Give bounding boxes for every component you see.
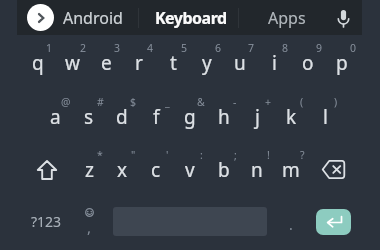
button[interactable]: & — [173, 90, 207, 143]
button[interactable]: 6 — [190, 36, 224, 89]
staticText: 6 — [215, 41, 222, 55]
staticText: 0 — [350, 41, 357, 55]
button[interactable]: ! — [240, 143, 274, 196]
button[interactable]: # — [72, 90, 106, 143]
staticText: a — [50, 104, 61, 130]
button[interactable]: 3 — [89, 36, 123, 89]
staticText: ) — [334, 95, 338, 109]
staticText: , — [87, 217, 92, 237]
button[interactable]: * — [72, 143, 106, 196]
button[interactable]: Apps — [268, 7, 306, 29]
staticText: o — [302, 50, 314, 76]
button[interactable]: Emoji — [72, 195, 106, 248]
staticText: i — [272, 50, 277, 76]
button[interactable]: 2 — [55, 36, 89, 89]
button[interactable]: + — [240, 90, 274, 143]
staticText: ? — [300, 148, 305, 162]
staticText: ! — [267, 148, 270, 162]
staticText: x — [117, 157, 128, 183]
staticText: q — [32, 50, 44, 76]
staticText: k — [286, 104, 297, 130]
staticText: 9 — [316, 41, 323, 55]
staticText: g — [184, 104, 196, 130]
staticText: ; — [234, 148, 237, 162]
staticText: . — [289, 215, 293, 234]
staticText: s — [84, 104, 94, 130]
button[interactable]: $ — [105, 90, 139, 143]
staticText: b — [218, 157, 230, 183]
button[interactable]: ? — [274, 143, 308, 196]
button[interactable]: @ — [38, 90, 72, 143]
button[interactable]: 9 — [291, 36, 325, 89]
staticText: _ — [165, 95, 170, 109]
button[interactable]: . — [275, 195, 307, 248]
staticText: l — [323, 104, 328, 130]
button[interactable]: ' — [139, 143, 173, 196]
staticText: c — [151, 157, 161, 183]
button[interactable]: 0 — [325, 36, 359, 89]
button[interactable]: 4 — [122, 36, 156, 89]
staticText: & — [197, 95, 205, 109]
staticText: * — [97, 148, 103, 162]
staticText: 5 — [181, 41, 188, 55]
button[interactable]: 7 — [223, 36, 257, 89]
button[interactable]: Keyboard — [155, 7, 227, 29]
staticText: ' — [166, 148, 169, 162]
staticText: f — [153, 104, 160, 130]
staticText: w — [65, 50, 80, 76]
staticText: + — [265, 95, 272, 109]
staticText: z — [85, 157, 94, 183]
button[interactable]: Enter — [316, 209, 351, 235]
staticText: @ — [61, 95, 71, 109]
staticText: 3 — [114, 41, 121, 55]
staticText: t — [170, 50, 177, 76]
staticText: j — [255, 104, 260, 130]
button[interactable]: : — [173, 143, 207, 196]
button[interactable]: ; — [207, 143, 241, 196]
staticText: " — [131, 148, 136, 162]
button[interactable]: ) — [308, 90, 342, 143]
staticText: 4 — [147, 41, 154, 55]
button[interactable]: Shift — [21, 143, 72, 196]
staticText: r — [135, 50, 143, 76]
button[interactable]: 1 — [21, 36, 55, 89]
button[interactable]: ?123 — [21, 195, 72, 248]
button[interactable]: ( — [274, 90, 308, 143]
staticText: h — [218, 104, 230, 130]
staticText: m — [282, 157, 300, 183]
button[interactable]: 5 — [156, 36, 190, 89]
staticText: 2 — [80, 41, 87, 55]
staticText: 7 — [248, 41, 255, 55]
staticText: # — [97, 95, 104, 109]
staticText: u — [234, 50, 246, 76]
button[interactable]: Backspace — [308, 143, 359, 196]
button[interactable]: 8 — [257, 36, 291, 89]
staticText: ?123 — [31, 212, 62, 231]
staticText: p — [336, 50, 348, 76]
button[interactable]: Expand toolbar — [27, 4, 54, 31]
staticText: d — [116, 104, 128, 130]
staticText: $ — [130, 95, 137, 109]
staticText: 1 — [46, 41, 53, 55]
staticText: n — [251, 157, 263, 183]
staticText: e — [101, 50, 112, 76]
button[interactable]: Voice input — [330, 5, 356, 31]
staticText: 8 — [282, 41, 289, 55]
staticText: y — [202, 50, 212, 76]
staticText: v — [185, 157, 195, 183]
staticText: ( — [300, 95, 304, 109]
staticText: : — [200, 148, 203, 162]
staticText: - — [233, 95, 237, 109]
button[interactable]: - — [207, 90, 241, 143]
button[interactable]: _ — [139, 90, 173, 143]
button[interactable]: Android — [63, 7, 123, 29]
button[interactable]: " — [105, 143, 139, 196]
